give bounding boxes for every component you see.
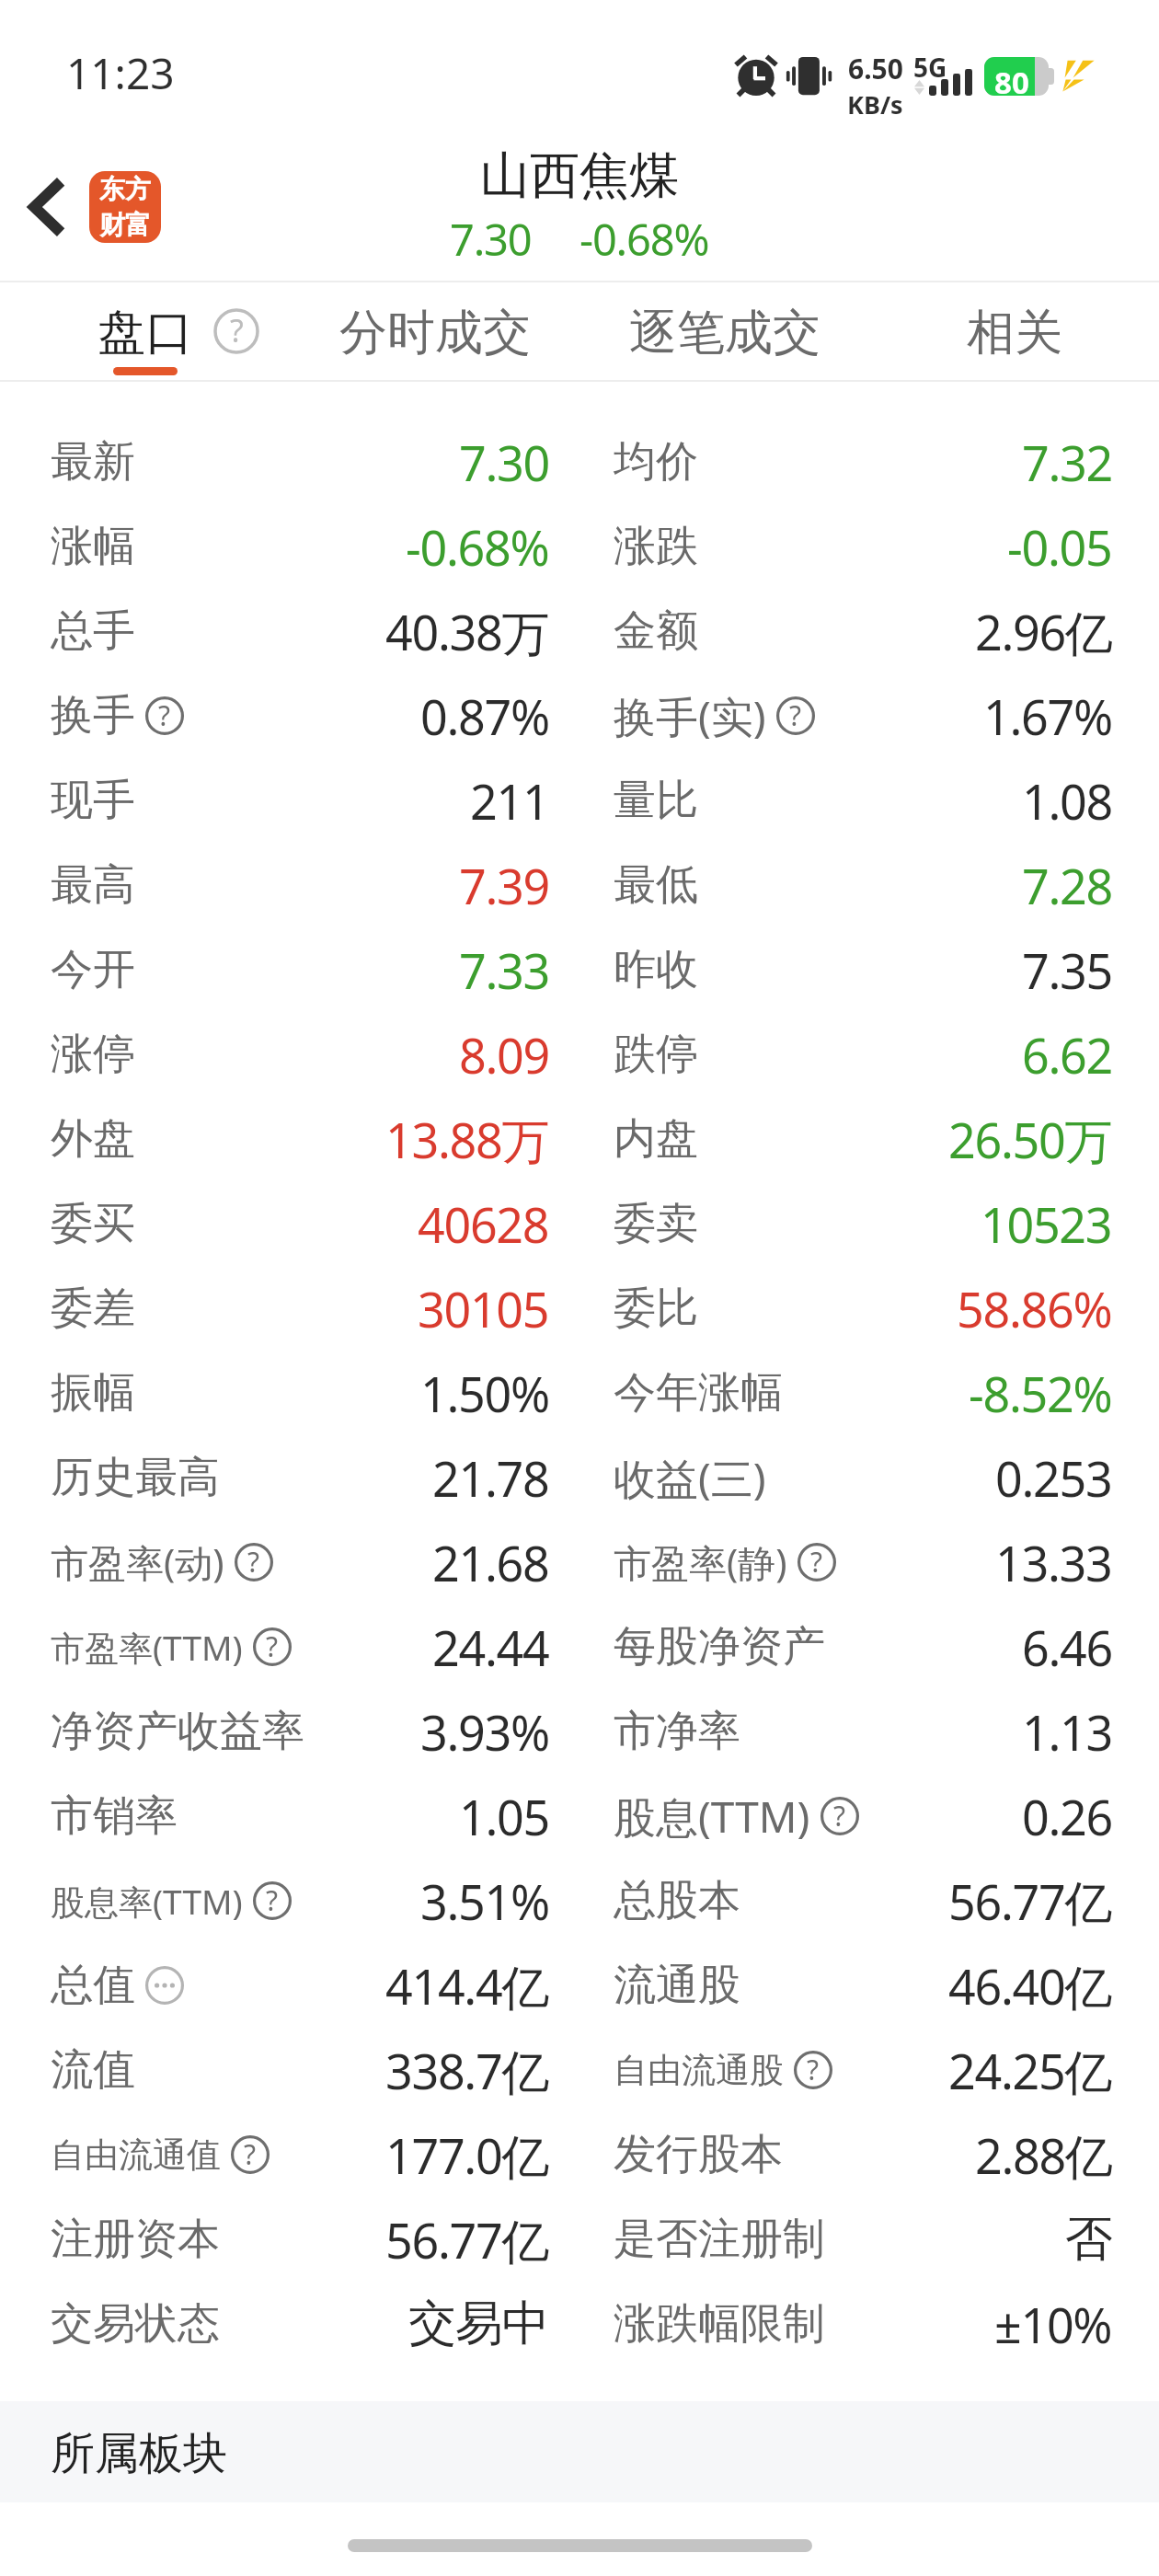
- staticText: 2.96亿: [975, 599, 1112, 664]
- staticText: 7.30: [450, 210, 532, 269]
- button[interactable]: 委差: [0, 1266, 579, 1351]
- button[interactable]: 现手: [0, 758, 579, 843]
- button[interactable]: Back: [4, 164, 90, 250]
- staticText: 委比: [614, 1282, 698, 1335]
- staticText: 最高: [51, 858, 135, 912]
- button[interactable]: 最低: [579, 843, 1159, 927]
- button[interactable]: 总手: [0, 589, 579, 673]
- staticText: 今年涨幅: [614, 1366, 783, 1420]
- button[interactable]: 自由流通股: [579, 2028, 1159, 2112]
- staticText: 8.09: [459, 1022, 549, 1087]
- staticText: 3.93%: [420, 1699, 549, 1765]
- staticText: 股息率(TTM): [51, 1878, 243, 1925]
- button[interactable]: 委比: [579, 1266, 1159, 1351]
- button[interactable]: 均价: [579, 420, 1159, 504]
- button[interactable]: 每股净资产: [579, 1604, 1159, 1689]
- button[interactable]: 注册资本: [0, 2197, 579, 2282]
- staticText: 40.38万: [385, 599, 549, 664]
- button[interactable]: 相关: [869, 281, 1159, 382]
- button[interactable]: 收益(三): [579, 1435, 1159, 1520]
- staticText: 振幅: [51, 1366, 135, 1420]
- button[interactable]: 金额: [579, 589, 1159, 673]
- staticText: 7.32: [1022, 430, 1112, 495]
- staticText: 交易中: [408, 2294, 549, 2354]
- button[interactable]: 涨幅: [0, 504, 579, 589]
- staticText: -0.05: [1007, 514, 1112, 580]
- staticText: 6.46: [1022, 1615, 1112, 1680]
- button[interactable]: 最新: [0, 420, 579, 504]
- staticText: 1.13: [1022, 1699, 1112, 1765]
- staticText: 7.35: [1022, 937, 1112, 1003]
- staticText: 总股本: [614, 1874, 740, 1927]
- button[interactable]: 委买: [0, 1181, 579, 1266]
- staticText: 0.253: [995, 1445, 1112, 1511]
- button[interactable]: 交易状态: [0, 2282, 579, 2366]
- staticText: 山西焦煤: [480, 144, 679, 207]
- button[interactable]: 今年涨幅: [579, 1351, 1159, 1435]
- staticText: 市盈率(TTM): [51, 1624, 243, 1671]
- button[interactable]: 最高: [0, 843, 579, 927]
- button[interactable]: 振幅: [0, 1351, 579, 1435]
- button[interactable]: 跌停: [579, 1012, 1159, 1097]
- staticText: 6.50: [848, 50, 903, 87]
- button[interactable]: 市盈率(静): [579, 1520, 1159, 1604]
- staticText: 市销率: [51, 1789, 178, 1843]
- staticText: 7.33: [459, 937, 549, 1003]
- staticText: 56.77亿: [948, 1869, 1112, 1934]
- button[interactable]: 委卖: [579, 1181, 1159, 1266]
- staticText: 5G: [913, 50, 947, 85]
- staticText: 注册资本: [51, 2213, 220, 2266]
- staticText: 净资产收益率: [51, 1705, 304, 1758]
- button[interactable]: 总值: [0, 1943, 579, 2028]
- button[interactable]: 流值: [0, 2028, 579, 2112]
- button[interactable]: 市盈率(动): [0, 1520, 579, 1604]
- button[interactable]: 发行股本: [579, 2112, 1159, 2197]
- button[interactable]: 市销率: [0, 1774, 579, 1858]
- button[interactable]: 外盘: [0, 1097, 579, 1181]
- staticText: 3.51%: [420, 1869, 549, 1934]
- button[interactable]: 昨收: [579, 927, 1159, 1012]
- button[interactable]: 是否注册制: [579, 2197, 1159, 2282]
- staticText: 338.7亿: [385, 2038, 549, 2103]
- button[interactable]: 逐笔成交: [579, 281, 869, 382]
- staticText: 21.78: [432, 1445, 549, 1511]
- staticText: 现手: [51, 774, 135, 827]
- staticText: 7.28: [1022, 853, 1112, 918]
- staticText: 177.0亿: [385, 2122, 549, 2188]
- button[interactable]: 换手(实): [579, 673, 1159, 758]
- staticText: 相关: [967, 303, 1062, 363]
- button[interactable]: 涨停: [0, 1012, 579, 1097]
- staticText: 市盈率(动): [51, 1536, 224, 1588]
- button[interactable]: 股息(TTM): [579, 1774, 1159, 1858]
- button[interactable]: 市净率: [579, 1689, 1159, 1774]
- button[interactable]: 净资产收益率: [0, 1689, 579, 1774]
- button[interactable]: 内盘: [579, 1097, 1159, 1181]
- staticText: 跌停: [614, 1028, 698, 1081]
- staticText: 涨跌幅限制: [614, 2297, 825, 2351]
- button[interactable]: 换手: [0, 673, 579, 758]
- staticText: 金额: [614, 604, 698, 658]
- button[interactable]: 自由流通值: [0, 2112, 579, 2197]
- staticText: 市盈率(静): [614, 1536, 787, 1588]
- staticText: 0.26: [1022, 1784, 1112, 1849]
- staticText: 总手: [51, 604, 135, 658]
- button[interactable]: 盘口: [0, 281, 290, 382]
- button[interactable]: 量比: [579, 758, 1159, 843]
- button[interactable]: 涨跌幅限制: [579, 2282, 1159, 2366]
- button[interactable]: 历史最高: [0, 1435, 579, 1520]
- button[interactable]: East Money logo: [89, 171, 161, 243]
- staticText: 26.50万: [948, 1107, 1112, 1172]
- button[interactable]: 涨跌: [579, 504, 1159, 589]
- staticText: 10523: [981, 1191, 1112, 1257]
- staticText: 东方: [99, 173, 151, 205]
- button[interactable]: 市盈率(TTM): [0, 1604, 579, 1689]
- button[interactable]: 今开: [0, 927, 579, 1012]
- button[interactable]: 股息率(TTM): [0, 1858, 579, 1943]
- button[interactable]: 流通股: [579, 1943, 1159, 2028]
- staticText: 24.25亿: [948, 2038, 1112, 2103]
- button[interactable]: 所属板块: [0, 2401, 1159, 2502]
- button[interactable]: 总股本: [579, 1858, 1159, 1943]
- staticText: 最低: [614, 858, 698, 912]
- button[interactable]: 分时成交: [290, 281, 579, 382]
- staticText: ?: [158, 696, 171, 734]
